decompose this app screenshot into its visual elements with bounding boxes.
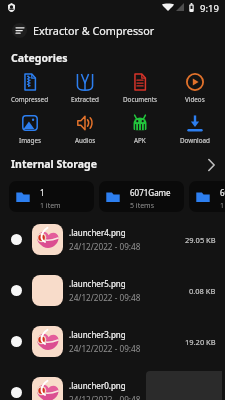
button[interactable]: .launcher5.png: [0, 265, 225, 316]
staticText: Audios: [75, 136, 96, 145]
staticText: Categories: [11, 51, 68, 65]
staticText: 0.08 KB: [189, 286, 216, 296]
staticText: .launcher4.png: [69, 227, 126, 238]
button[interactable]: Videos: [170, 73, 220, 104]
staticText: 19.20 KB: [185, 337, 216, 347]
button[interactable]: See all: [201, 155, 221, 175]
staticText: 24/12/2022 - 09:48: [69, 343, 141, 354]
staticText: Compressed: [11, 95, 49, 104]
button[interactable]: Download: [170, 114, 220, 145]
staticText: Images: [19, 136, 41, 145]
staticText: Download: [180, 136, 210, 145]
staticText: Documents: [123, 95, 157, 104]
staticText: 24/12/2022 - 09:48: [69, 292, 141, 303]
staticText: APK: [134, 136, 146, 145]
button[interactable]: .launcher0.png: [0, 367, 225, 400]
button[interactable]: .launcher4.png: [0, 214, 225, 265]
staticText: 6071Gamess: [220, 187, 225, 198]
staticText: 1 item: [220, 201, 225, 211]
staticText: 5 items: [130, 201, 155, 211]
button[interactable]: 1: [9, 181, 94, 212]
button[interactable]: .launcher3.png: [0, 316, 225, 367]
staticText: .launcher5.png: [69, 278, 126, 289]
button[interactable]: Documents: [115, 73, 165, 104]
staticText: Internal Storage: [11, 157, 97, 171]
button[interactable]: 6071Game: [99, 181, 184, 212]
staticText: 1 item: [40, 201, 61, 211]
button[interactable]: APK: [115, 114, 165, 145]
button[interactable]: Menu: [12, 23, 27, 38]
button[interactable]: Compressed: [5, 73, 55, 104]
staticText: 6071Game: [130, 187, 171, 198]
staticText: .launcher3.png: [69, 329, 126, 340]
staticText: 9:19: [200, 2, 219, 15]
staticText: 24/12/2022 - 09:48: [69, 394, 141, 400]
staticText: 24/12/2022 - 09:48: [69, 241, 141, 252]
staticText: Videos: [185, 95, 205, 104]
button[interactable]: 6071Gamess: [189, 181, 225, 212]
staticText: Extractor & Compressor: [33, 23, 155, 38]
button[interactable]: Audios: [60, 114, 110, 145]
staticText: Extracted: [71, 95, 99, 104]
staticText: 29.05 KB: [185, 235, 216, 245]
staticText: 1: [40, 187, 45, 198]
button[interactable]: Extracted: [60, 73, 110, 104]
button[interactable]: Images: [5, 114, 55, 145]
staticText: .launcher0.png: [69, 380, 126, 391]
